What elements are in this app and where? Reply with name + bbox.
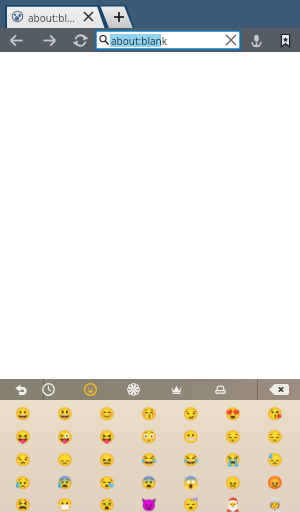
button[interactable]: 😪: [86, 471, 128, 494]
button[interactable]: Smileys: [76, 379, 104, 400]
button[interactable]: 😷: [44, 494, 86, 512]
button[interactable]: Nature: [119, 379, 147, 400]
staticText: 😘: [267, 406, 283, 421]
button[interactable]: 😱: [170, 471, 212, 494]
button[interactable]: 😰: [44, 471, 86, 494]
button[interactable]: 😒: [2, 448, 44, 471]
staticText: about:blank: [111, 34, 168, 48]
button[interactable]: 😞: [44, 448, 86, 471]
button[interactable]: 👿: [128, 494, 170, 512]
staticText: 😍: [225, 406, 241, 421]
staticText: 😳: [141, 429, 157, 444]
staticText: 😂: [141, 452, 157, 467]
staticText: about:bl…: [28, 11, 75, 25]
button[interactable]: 😫: [2, 494, 44, 512]
staticText: 😬: [183, 429, 199, 444]
staticText: 😞: [57, 452, 73, 467]
staticText: 😃: [57, 406, 73, 421]
staticText: 😱: [183, 475, 199, 490]
staticText: 😊: [99, 406, 115, 421]
button[interactable]: Clear: [222, 30, 240, 50]
button[interactable]: 🎅: [212, 494, 254, 512]
staticText: 😰: [57, 475, 73, 490]
button[interactable]: Voice search: [244, 28, 268, 52]
button[interactable]: 😍: [212, 402, 254, 425]
staticText: 😡: [267, 475, 283, 490]
staticText: 😵: [99, 497, 115, 512]
button[interactable]: Forward: [37, 28, 61, 52]
button[interactable]: 😂: [170, 448, 212, 471]
button[interactable]: 😔: [212, 425, 254, 448]
button[interactable]: 😜: [44, 425, 86, 448]
staticText: 😔: [267, 429, 283, 444]
button[interactable]: Recent: [34, 379, 62, 400]
button[interactable]: Undo: [7, 379, 35, 400]
staticText: 😠: [225, 475, 241, 490]
button[interactable]: 😠: [212, 471, 254, 494]
button[interactable]: Bookmarks: [273, 28, 297, 52]
staticText: 🎅: [225, 497, 241, 512]
button[interactable]: Back: [4, 28, 28, 52]
button[interactable]: 😴: [170, 494, 212, 512]
staticText: 😔: [225, 429, 241, 444]
staticText: 😏: [183, 406, 199, 421]
staticText: 😥: [15, 475, 31, 490]
button[interactable]: 😂: [128, 448, 170, 471]
staticText: 👳: [267, 497, 283, 512]
staticText: 😓: [267, 452, 283, 467]
button[interactable]: 😊: [86, 402, 128, 425]
button[interactable]: 😀: [2, 402, 44, 425]
staticText: 😴: [183, 497, 199, 512]
button[interactable]: 😥: [2, 471, 44, 494]
staticText: 😨: [141, 475, 157, 490]
button[interactable]: 😵: [86, 494, 128, 512]
staticText: 😪: [99, 475, 115, 490]
staticText: 😚: [141, 406, 157, 421]
staticText: 😝: [99, 429, 115, 444]
staticText: 😜: [57, 429, 73, 444]
staticText: 😷: [57, 497, 73, 512]
button[interactable]: 😝: [86, 425, 128, 448]
button[interactable]: 😡: [254, 471, 296, 494]
button[interactable]: 😳: [128, 425, 170, 448]
staticText: 😝: [15, 429, 31, 444]
button[interactable]: 😝: [2, 425, 44, 448]
button[interactable]: 😬: [170, 425, 212, 448]
button[interactable]: New tab: [99, 5, 135, 28]
button[interactable]: 😘: [254, 402, 296, 425]
staticText: 😭: [225, 452, 241, 467]
button[interactable]: 😖: [86, 448, 128, 471]
button[interactable]: 😔: [254, 425, 296, 448]
button[interactable]: Close tab: [78, 5, 98, 28]
button[interactable]: 😚: [128, 402, 170, 425]
button[interactable]: 😨: [128, 471, 170, 494]
button[interactable]: 😏: [170, 402, 212, 425]
staticText: 😒: [15, 452, 31, 467]
button[interactable]: Places: [206, 379, 234, 400]
staticText: 😖: [99, 452, 115, 467]
button[interactable]: Backspace: [258, 379, 300, 400]
button[interactable]: Objects: [162, 379, 190, 400]
button[interactable]: about:blank: [95, 30, 241, 50]
button[interactable]: 😃: [44, 402, 86, 425]
button[interactable]: 😓: [254, 448, 296, 471]
staticText: 😀: [15, 406, 31, 421]
staticText: 😂: [183, 452, 199, 467]
staticText: 👿: [141, 497, 157, 512]
button[interactable]: 👳: [254, 494, 296, 512]
button[interactable]: Reload: [68, 28, 92, 52]
button[interactable]: about:bl…: [5, 5, 83, 28]
button[interactable]: 😭: [212, 448, 254, 471]
staticText: 😫: [15, 497, 31, 512]
